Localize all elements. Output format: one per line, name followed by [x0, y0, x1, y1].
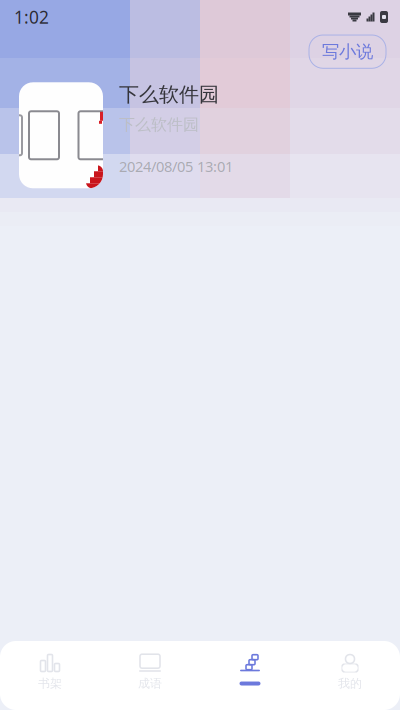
staticText: 下么软件园 [119, 115, 199, 135]
staticText: 2024/08/05 13:01 [119, 156, 233, 176]
button[interactable]: 书架 [0, 641, 100, 710]
staticText: 写小说 [322, 41, 373, 62]
button[interactable]: 成语 [100, 641, 200, 710]
staticText: 1:02 [14, 5, 49, 28]
staticText: 下么软件园 [119, 82, 219, 107]
button[interactable]: 我的 [300, 641, 400, 710]
button[interactable]: 写小说 [309, 35, 386, 68]
button[interactable]: 下么软件园 [0, 82, 400, 188]
staticText: 成语 [138, 676, 162, 691]
button[interactable]: 写作 [200, 641, 300, 710]
staticText: 书架 [38, 676, 62, 691]
staticText: 我的 [338, 676, 362, 691]
